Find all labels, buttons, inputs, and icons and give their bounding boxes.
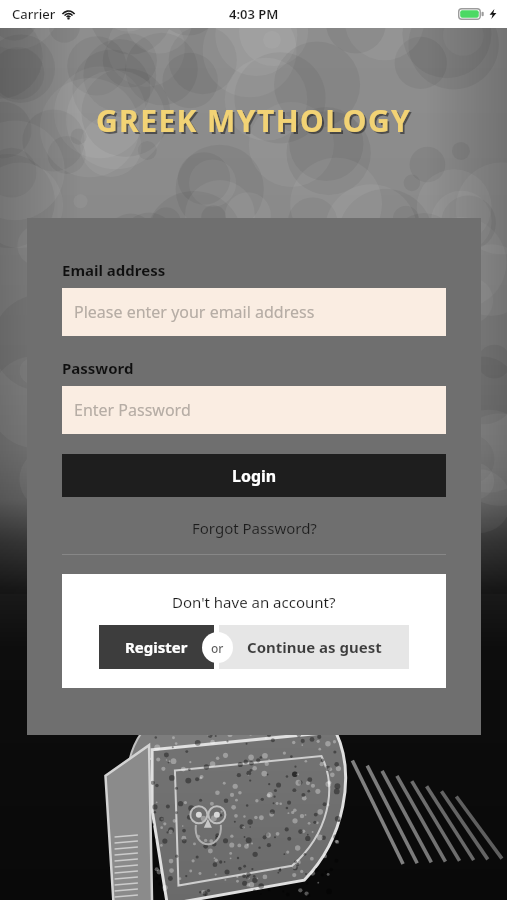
staticText: 4:03 PM: [229, 5, 279, 23]
staticText: GREEK MYTHOLOGY: [96, 100, 412, 141]
staticText: Continue as guest: [247, 637, 382, 657]
button[interactable]: Please enter your email address: [62, 288, 446, 336]
button[interactable]: Enter Password: [62, 386, 446, 434]
staticText: or: [211, 640, 224, 656]
staticText: Don't have an account?: [172, 592, 336, 612]
button[interactable]: Continue as guest: [219, 625, 409, 669]
button[interactable]: Register: [99, 625, 214, 669]
other: or: [202, 632, 233, 663]
staticText: Please enter your email address: [74, 301, 315, 323]
staticText: Login: [232, 465, 277, 487]
staticText: GREEK MYTHOLOGY: [98, 102, 414, 143]
staticText: Email address: [62, 260, 166, 280]
staticText: Forgot Password?: [192, 518, 317, 538]
staticText: Enter Password: [74, 399, 191, 421]
staticText: Carrier: [12, 5, 56, 23]
staticText: Password: [62, 358, 134, 378]
button[interactable]: Login: [62, 454, 446, 497]
staticText: Register: [125, 637, 188, 657]
button[interactable]: Forgot Password?: [62, 515, 446, 541]
